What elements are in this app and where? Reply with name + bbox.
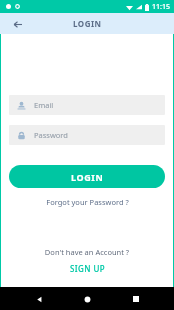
- staticText: Forgot your Password ?: [46, 197, 129, 207]
- staticText: Password: [34, 130, 68, 140]
- button[interactable]: Recents: [126, 289, 146, 309]
- button[interactable]: SIGN UP: [9, 263, 165, 274]
- button[interactable]: Back: [9, 16, 25, 32]
- button[interactable]: LOGIN: [9, 165, 165, 188]
- staticText: Email: [34, 100, 54, 110]
- button[interactable]: Back: [29, 289, 49, 309]
- staticText: LOGIN: [73, 18, 102, 29]
- staticText: 11:15: [152, 2, 170, 12]
- button[interactable]: Home: [77, 289, 97, 309]
- staticText: LOGIN: [71, 171, 104, 183]
- staticText: Don't have an Account ?: [9, 247, 165, 257]
- button[interactable]: Forgot your Password ?: [9, 197, 165, 207]
- staticText: SIGN UP: [70, 263, 105, 274]
- button[interactable]: Email: [9, 95, 165, 115]
- button[interactable]: Password: [9, 125, 165, 145]
